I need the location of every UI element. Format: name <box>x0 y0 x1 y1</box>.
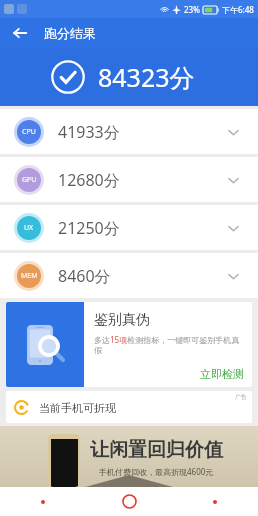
staticText: 84323分 <box>98 60 195 94</box>
other: Expand GPU <box>222 169 244 191</box>
staticText: 12680分 <box>58 169 120 191</box>
button[interactable]: Home <box>86 487 172 516</box>
button[interactable]: GPU <box>0 157 258 202</box>
other: Expand UX <box>222 217 244 239</box>
staticText: MEM <box>21 271 38 281</box>
button[interactable]: CPU <box>0 109 258 154</box>
staticText: 21250分 <box>58 217 120 239</box>
staticText: 多达15项检测指标，一键即可鉴别手机真假 <box>94 334 244 356</box>
button[interactable]: 让闲置回归价值 <box>0 426 258 487</box>
other: Expand MEM <box>222 265 244 287</box>
button[interactable]: UX <box>0 205 258 250</box>
button[interactable]: 立即检测 <box>200 367 244 381</box>
other: Expand CPU <box>222 121 244 143</box>
staticText: 广告 <box>235 393 247 401</box>
button[interactable]: 当前手机可折现 <box>6 391 252 423</box>
staticText: 23% <box>184 4 200 15</box>
button[interactable]: MEM <box>0 253 258 298</box>
staticText: 下午6:48 <box>222 4 254 15</box>
staticText: CPU <box>22 127 36 137</box>
staticText: UX <box>24 223 34 233</box>
staticText: 立即检测 <box>200 367 244 381</box>
staticText: 让闲置回归价值 <box>90 438 223 462</box>
staticText: GPU <box>22 175 37 185</box>
staticText: 跑分结果 <box>44 25 96 41</box>
staticText: 鉴别真伪 <box>94 311 150 329</box>
staticText: 当前手机可折现 <box>39 401 116 415</box>
button[interactable]: 鉴别真伪 <box>6 302 252 387</box>
button[interactable]: Back <box>9 22 31 44</box>
button[interactable]: Recents <box>172 487 258 516</box>
staticText: 手机付费回收，最高折现4600元 <box>99 466 214 477</box>
button[interactable]: Back <box>0 487 86 516</box>
staticText: 8460分 <box>58 265 111 287</box>
staticText: 41933分 <box>58 121 120 143</box>
